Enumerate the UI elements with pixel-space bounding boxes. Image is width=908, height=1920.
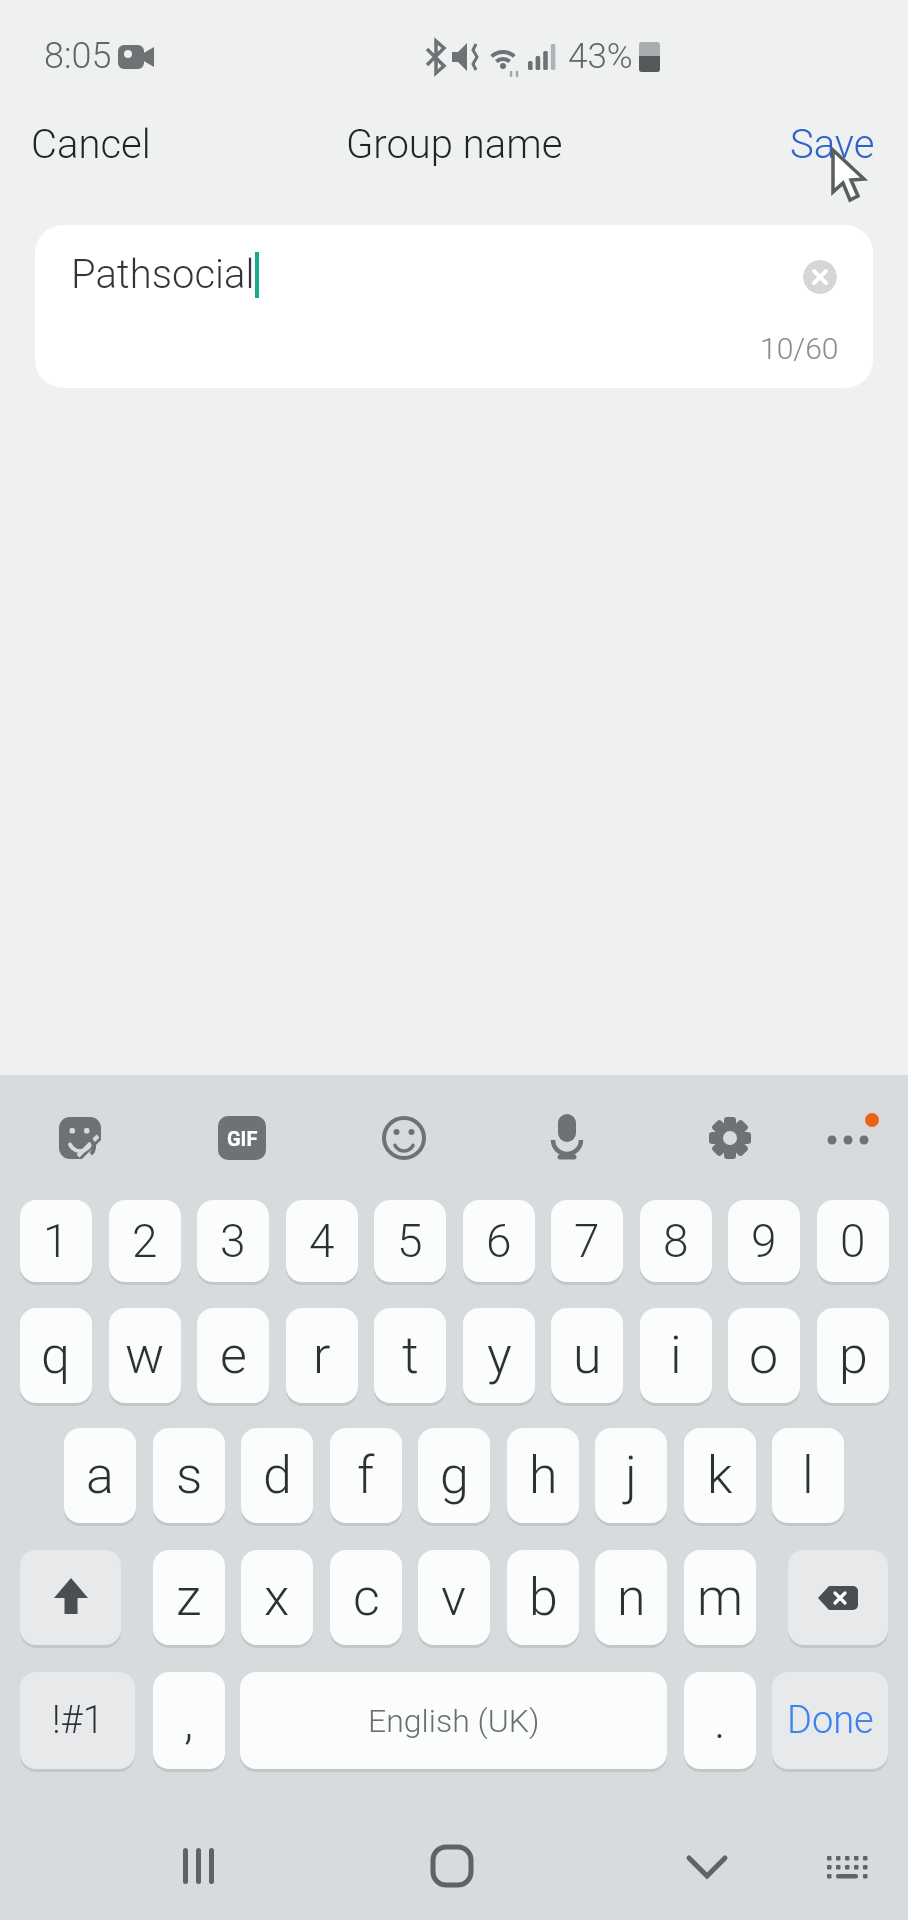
button[interactable] bbox=[708, 1116, 752, 1160]
staticText: 4 bbox=[309, 1214, 335, 1268]
button[interactable]: h bbox=[507, 1428, 579, 1523]
staticText: 8 bbox=[663, 1214, 689, 1268]
staticText: z bbox=[176, 1567, 202, 1628]
button[interactable]: k bbox=[684, 1428, 756, 1523]
button[interactable]: i bbox=[640, 1308, 712, 1403]
button[interactable]: f bbox=[330, 1428, 402, 1523]
staticText: Group name bbox=[346, 121, 563, 168]
button[interactable] bbox=[820, 1840, 872, 1892]
staticText: y bbox=[487, 1325, 512, 1386]
button[interactable]: b bbox=[507, 1550, 579, 1645]
staticText: Cancel bbox=[31, 121, 151, 168]
button[interactable]: o bbox=[728, 1308, 800, 1403]
staticText: t bbox=[402, 1325, 419, 1386]
staticText: u bbox=[573, 1325, 602, 1386]
button[interactable]: u bbox=[551, 1308, 623, 1403]
button[interactable]: !#1 bbox=[20, 1672, 135, 1769]
staticText: l bbox=[802, 1445, 814, 1506]
staticText: Pathsocial bbox=[71, 251, 255, 298]
button[interactable]: s bbox=[153, 1428, 225, 1523]
button[interactable]: . bbox=[684, 1672, 756, 1769]
button[interactable]: GIF bbox=[218, 1116, 266, 1160]
button[interactable]: y bbox=[463, 1308, 535, 1403]
button[interactable] bbox=[382, 1116, 426, 1160]
staticText: r bbox=[313, 1325, 331, 1386]
staticText: p bbox=[839, 1325, 868, 1386]
staticText: 2 bbox=[132, 1214, 158, 1268]
button[interactable]: 9 bbox=[728, 1200, 800, 1282]
button[interactable]: d bbox=[241, 1428, 313, 1523]
button[interactable] bbox=[820, 1116, 864, 1160]
staticText: s bbox=[176, 1445, 203, 1506]
staticText: 7 bbox=[574, 1214, 600, 1268]
staticText: k bbox=[707, 1445, 733, 1506]
staticText: v bbox=[441, 1567, 467, 1628]
staticText: q bbox=[41, 1325, 71, 1386]
staticText: 1 bbox=[43, 1214, 69, 1268]
staticText: g bbox=[440, 1445, 469, 1506]
button[interactable]: 1 bbox=[20, 1200, 92, 1282]
staticText: a bbox=[86, 1445, 114, 1506]
button[interactable]: r bbox=[286, 1308, 358, 1403]
button[interactable] bbox=[172, 1840, 224, 1892]
staticText: c bbox=[353, 1567, 380, 1628]
button[interactable]: 8 bbox=[640, 1200, 712, 1282]
button[interactable] bbox=[427, 1840, 479, 1892]
staticText: . bbox=[714, 1693, 726, 1749]
staticText: !#1 bbox=[52, 1698, 104, 1743]
button[interactable]: q bbox=[20, 1308, 92, 1403]
button[interactable] bbox=[682, 1840, 734, 1892]
button[interactable]: Cancel bbox=[31, 121, 151, 168]
staticText: 0 bbox=[840, 1214, 866, 1268]
button[interactable]: Done bbox=[772, 1672, 888, 1769]
staticText: n bbox=[617, 1567, 646, 1628]
button[interactable]: p bbox=[817, 1308, 889, 1403]
staticText: 6 bbox=[486, 1214, 512, 1268]
button[interactable] bbox=[20, 1550, 121, 1645]
staticText: 3 bbox=[220, 1214, 246, 1268]
button[interactable]: t bbox=[374, 1308, 446, 1403]
button[interactable]: e bbox=[197, 1308, 269, 1403]
button[interactable]: x bbox=[241, 1550, 313, 1645]
staticText: Done bbox=[787, 1698, 874, 1743]
button[interactable]: Save bbox=[790, 121, 875, 168]
button[interactable]: j bbox=[595, 1428, 667, 1523]
button[interactable]: 4 bbox=[286, 1200, 358, 1282]
button[interactable]: 0 bbox=[817, 1200, 889, 1282]
button[interactable]: a bbox=[64, 1428, 136, 1523]
button[interactable]: m bbox=[684, 1550, 756, 1645]
button[interactable] bbox=[59, 1116, 103, 1160]
button[interactable]: w bbox=[109, 1308, 181, 1403]
staticText: m bbox=[697, 1567, 744, 1628]
staticText: 10/60 bbox=[760, 331, 839, 366]
staticText: f bbox=[357, 1445, 375, 1506]
staticText: e bbox=[220, 1325, 247, 1386]
staticText: w bbox=[125, 1325, 165, 1386]
button[interactable]: n bbox=[595, 1550, 667, 1645]
button[interactable]: 2 bbox=[109, 1200, 181, 1282]
button[interactable]: 5 bbox=[374, 1200, 446, 1282]
button[interactable]: 6 bbox=[463, 1200, 535, 1282]
button[interactable]: v bbox=[418, 1550, 490, 1645]
button[interactable] bbox=[545, 1116, 589, 1160]
button[interactable]: 7 bbox=[551, 1200, 623, 1282]
button[interactable]: z bbox=[153, 1550, 225, 1645]
button[interactable]: 3 bbox=[197, 1200, 269, 1282]
button[interactable]: c bbox=[330, 1550, 402, 1645]
staticText: j bbox=[625, 1445, 637, 1506]
staticText: 8:05 bbox=[44, 35, 112, 77]
button[interactable]: , bbox=[153, 1672, 225, 1769]
staticText: d bbox=[263, 1445, 292, 1506]
staticText: 9 bbox=[751, 1214, 777, 1268]
staticText: i bbox=[670, 1325, 682, 1386]
staticText: Save bbox=[790, 121, 875, 168]
button[interactable]: l bbox=[772, 1428, 844, 1523]
button[interactable]: g bbox=[418, 1428, 490, 1523]
button[interactable] bbox=[803, 260, 837, 294]
staticText: 5 bbox=[397, 1214, 423, 1268]
button[interactable]: Pathsocial bbox=[35, 225, 873, 388]
staticText: h bbox=[529, 1445, 558, 1506]
button[interactable] bbox=[788, 1550, 888, 1645]
button[interactable]: English (UK) bbox=[240, 1672, 667, 1769]
staticText: 43% bbox=[568, 36, 633, 77]
